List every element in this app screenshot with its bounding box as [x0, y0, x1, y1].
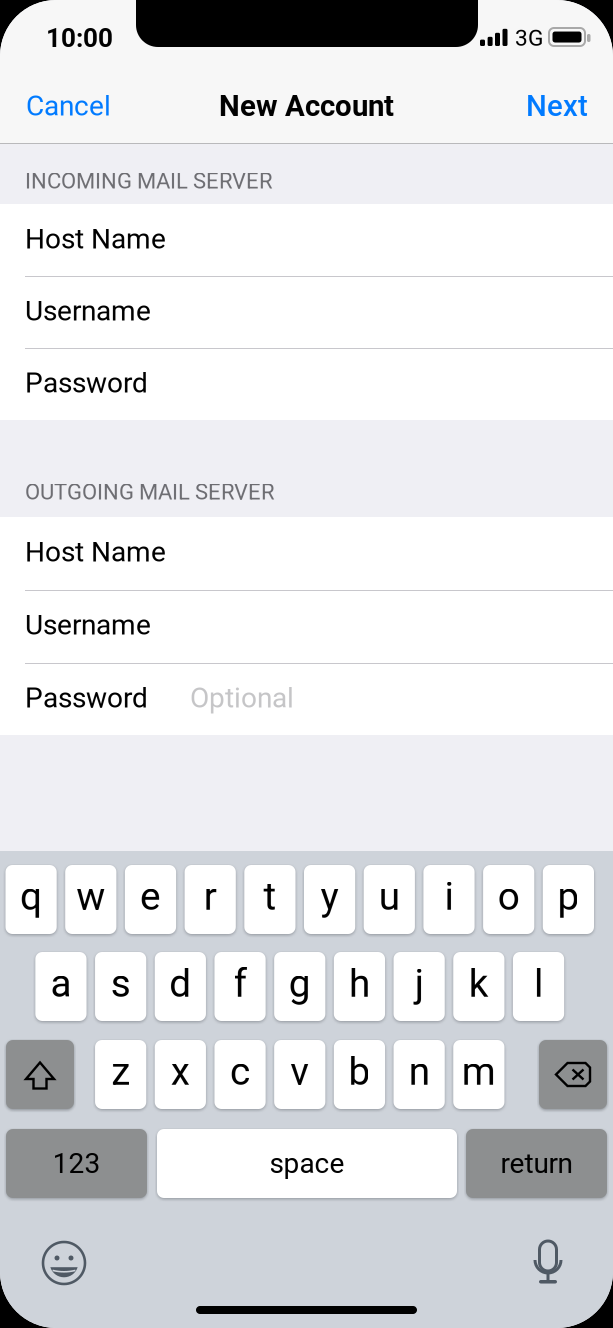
staticText: e — [140, 874, 161, 919]
staticText: w — [76, 874, 105, 919]
staticText: Optional — [190, 682, 294, 714]
button[interactable]: q — [5, 865, 57, 934]
button[interactable]: g — [274, 952, 325, 1021]
button[interactable]: n — [394, 1040, 445, 1109]
staticText: Password — [25, 682, 148, 714]
button[interactable]: b — [334, 1040, 385, 1109]
staticText: 123 — [52, 1147, 100, 1180]
staticText: d — [169, 961, 191, 1006]
button[interactable]: l — [513, 952, 564, 1021]
staticText: Host Name — [25, 536, 166, 568]
staticText: x — [171, 1049, 190, 1094]
button[interactable]: m — [453, 1040, 504, 1109]
button[interactable]: Emoji keyboard — [41, 1240, 87, 1286]
staticText: s — [111, 961, 131, 1006]
button[interactable]: Username — [0, 590, 613, 662]
button[interactable]: y — [304, 865, 355, 934]
button[interactable]: return — [466, 1129, 607, 1198]
button[interactable]: z — [95, 1040, 146, 1109]
staticText: Username — [25, 609, 151, 641]
staticText: q — [20, 874, 42, 919]
button[interactable]: o — [483, 865, 534, 934]
button[interactable]: j — [394, 952, 445, 1021]
staticText: u — [379, 874, 400, 919]
button[interactable]: s — [95, 952, 146, 1021]
staticText: 3G — [515, 25, 543, 51]
button[interactable]: e — [125, 865, 176, 934]
button[interactable]: r — [185, 865, 236, 934]
staticText: return — [500, 1147, 572, 1180]
button[interactable]: space — [157, 1129, 457, 1198]
button[interactable]: t — [244, 865, 295, 934]
staticText: i — [444, 874, 453, 919]
staticText: v — [290, 1049, 309, 1094]
button[interactable]: p — [543, 865, 594, 934]
button[interactable]: Username — [0, 276, 613, 348]
staticText: 10:00 — [46, 23, 113, 53]
staticText: Host Name — [25, 223, 166, 255]
staticText: p — [557, 874, 579, 919]
staticText: New Account — [219, 89, 394, 123]
staticText: c — [230, 1049, 250, 1094]
staticText: l — [534, 961, 543, 1006]
button[interactable]: w — [65, 865, 116, 934]
button[interactable]: a — [35, 952, 87, 1021]
button[interactable]: k — [453, 952, 504, 1021]
button[interactable]: c — [214, 1040, 266, 1109]
staticText: b — [348, 1049, 370, 1094]
button[interactable]: v — [274, 1040, 325, 1109]
staticText: g — [289, 961, 311, 1006]
button[interactable]: f — [214, 952, 266, 1021]
button[interactable]: Next — [455, 76, 603, 136]
staticText: o — [498, 874, 520, 919]
button[interactable]: Host Name — [0, 517, 613, 589]
staticText: Next — [526, 89, 588, 123]
staticText: OUTGOING MAIL SERVER — [25, 479, 275, 505]
button[interactable]: Password — [0, 348, 613, 420]
staticText: r — [204, 874, 217, 919]
staticText: t — [263, 874, 276, 919]
staticText: n — [409, 1049, 430, 1094]
staticText: h — [349, 961, 370, 1006]
button[interactable]: Cancel — [10, 76, 170, 136]
staticText: j — [415, 961, 424, 1006]
staticText: Password — [25, 367, 148, 399]
button[interactable]: Dictation — [531, 1239, 565, 1287]
staticText: z — [111, 1049, 130, 1094]
staticText: m — [462, 1049, 496, 1094]
button[interactable]: i — [423, 865, 475, 934]
staticText: k — [469, 961, 489, 1006]
button[interactable]: Shift — [6, 1040, 74, 1109]
button[interactable]: Delete — [539, 1040, 607, 1109]
staticText: Cancel — [26, 90, 111, 122]
staticText: Username — [25, 295, 151, 327]
staticText: INCOMING MAIL SERVER — [25, 168, 273, 194]
staticText: space — [269, 1147, 344, 1180]
button[interactable]: Host Name — [0, 204, 613, 276]
staticText: a — [50, 961, 71, 1006]
button[interactable]: x — [155, 1040, 206, 1109]
staticText: f — [234, 961, 247, 1006]
staticText: y — [321, 874, 339, 919]
button[interactable]: h — [334, 952, 385, 1021]
button[interactable]: 123 — [6, 1129, 147, 1198]
button[interactable]: Password — [0, 663, 613, 735]
button[interactable]: d — [155, 952, 206, 1021]
button[interactable]: u — [364, 865, 415, 934]
